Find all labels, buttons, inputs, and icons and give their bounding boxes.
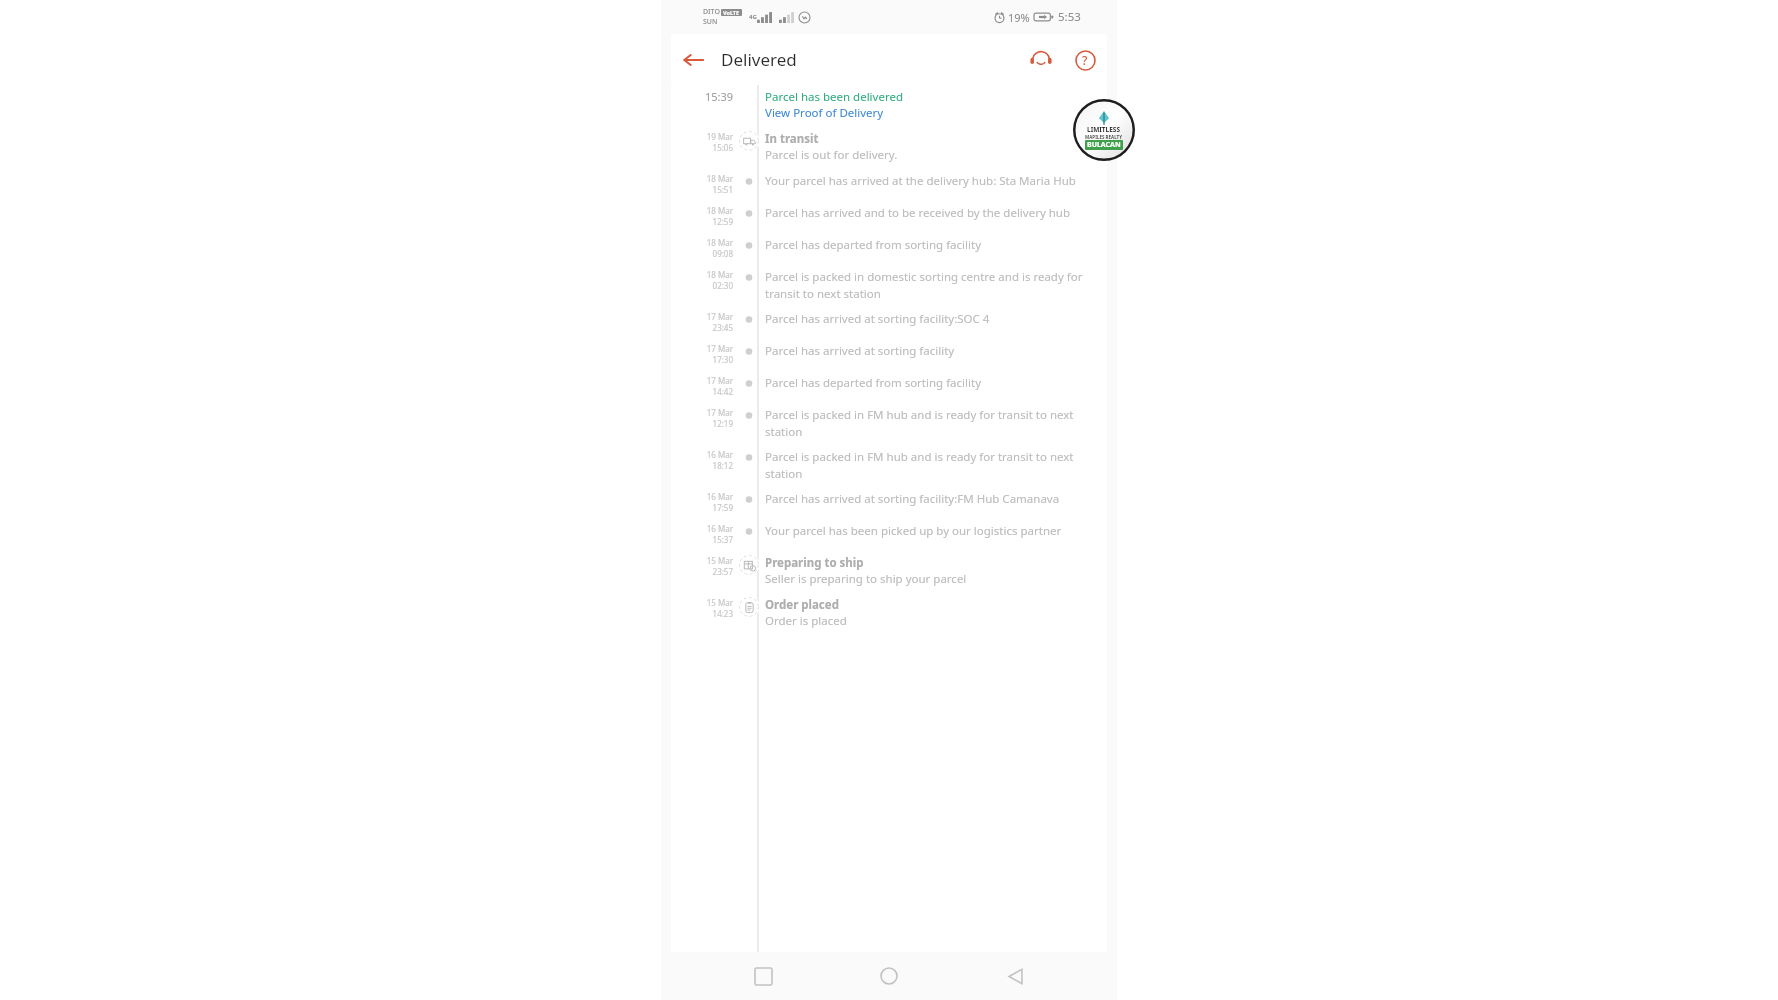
staticText: 02:30 <box>712 280 733 291</box>
staticText: Preparing to ship <box>765 555 864 571</box>
button[interactable]: 17 Mar <box>671 365 1107 397</box>
staticText: View Proof of Delivery <box>765 105 884 121</box>
button[interactable]: 16 Mar <box>671 439 1107 481</box>
staticText: Parcel has been delivered <box>765 89 903 105</box>
staticText: 17 Mar <box>706 407 733 418</box>
staticText: 18 Mar <box>706 237 733 248</box>
staticText: 17 Mar <box>706 311 733 322</box>
staticText: 17 Mar <box>706 375 733 386</box>
staticText: ? <box>1082 52 1088 68</box>
staticText: SUN <box>703 17 718 27</box>
button[interactable]: 16 Mar <box>671 513 1107 545</box>
staticText: 23:57 <box>712 566 733 577</box>
staticText: Your parcel has arrived at the delivery … <box>765 173 1076 189</box>
staticText: 16 Mar <box>706 523 733 534</box>
button[interactable]: 17 Mar <box>671 397 1107 439</box>
staticText: 19 Mar <box>706 131 733 142</box>
button[interactable]: 17 Mar <box>671 301 1107 333</box>
staticText: Order is placed <box>765 613 847 629</box>
staticText: Parcel is packed in domestic sorting cen… <box>765 269 1093 301</box>
staticText: Parcel has arrived at sorting facility <box>765 343 955 359</box>
staticText: Parcel has arrived at sorting facility:S… <box>765 311 990 327</box>
staticText: 19% <box>1008 10 1030 25</box>
staticText: 15 Mar <box>706 597 733 608</box>
staticText: Order placed <box>765 597 839 613</box>
button[interactable]: Help <box>1063 38 1107 82</box>
button[interactable]: 18 Mar <box>671 227 1107 259</box>
button[interactable]: 18 Mar <box>671 259 1107 301</box>
staticText: 12:19 <box>712 418 733 429</box>
staticText: 16 Mar <box>706 491 733 502</box>
staticText: Parcel has arrived at sorting facility:F… <box>765 491 1060 507</box>
staticText: 15:37 <box>712 534 733 545</box>
staticText: 4G <box>749 13 757 21</box>
button[interactable]: Customer support <box>1019 38 1063 82</box>
staticText: Parcel has departed from sorting facilit… <box>765 237 982 253</box>
button[interactable]: 18 Mar <box>671 195 1107 227</box>
staticText: 16 Mar <box>706 449 733 460</box>
staticText: MAPILES REALTY <box>1085 134 1123 140</box>
staticText: 12:59 <box>712 216 733 227</box>
staticText: 18 Mar <box>706 173 733 184</box>
button[interactable]: 15:39 <box>671 85 1107 121</box>
staticText: Parcel is out for delivery. <box>765 147 898 163</box>
staticText: Parcel has arrived and to be received by… <box>765 205 1071 221</box>
staticText: BULACAN <box>1087 140 1121 150</box>
button[interactable]: 17 Mar <box>671 333 1107 365</box>
button[interactable]: 16 Mar <box>671 481 1107 513</box>
staticText: DITO <box>703 7 720 17</box>
staticText: 18 Mar <box>706 269 733 280</box>
staticText: Seller is preparing to ship your parcel <box>765 571 967 587</box>
staticText: 5:53 <box>1058 9 1081 25</box>
staticText: 17:30 <box>712 354 733 365</box>
staticText: 15:06 <box>712 142 733 153</box>
button[interactable]: Recent apps <box>739 952 787 1000</box>
staticText: Parcel is packed in FM hub and is ready … <box>765 449 1093 481</box>
button[interactable]: Back <box>991 952 1039 1000</box>
staticText: 17 Mar <box>706 343 733 354</box>
staticText: 17:59 <box>712 502 733 513</box>
staticText: In transit <box>765 131 819 147</box>
staticText: 15:39 <box>704 89 733 104</box>
staticText: 15 Mar <box>706 555 733 566</box>
staticText: Your parcel has been picked up by our lo… <box>765 523 1062 539</box>
staticText: LIMITLESS <box>1087 125 1121 134</box>
button[interactable]: Back <box>671 37 717 83</box>
staticText: Delivered <box>721 48 797 71</box>
staticText: VoLTE <box>723 9 740 16</box>
staticText: Parcel is packed in FM hub and is ready … <box>765 407 1093 439</box>
staticText: 18:12 <box>712 460 733 471</box>
button[interactable]: Home <box>865 952 913 1000</box>
staticText: Parcel has departed from sorting facilit… <box>765 375 982 391</box>
staticText: 18 Mar <box>706 205 733 216</box>
staticText: 14:23 <box>712 608 733 619</box>
button[interactable]: 15 Mar <box>671 587 1107 629</box>
staticText: 09:08 <box>712 248 733 259</box>
staticText: 23:45 <box>712 322 733 333</box>
button[interactable]: 15 Mar <box>671 545 1107 587</box>
staticText: 14:42 <box>712 386 733 397</box>
button[interactable]: 18 Mar <box>671 163 1107 195</box>
button[interactable]: 19 Mar <box>671 121 1107 163</box>
staticText: 15:51 <box>712 184 733 195</box>
